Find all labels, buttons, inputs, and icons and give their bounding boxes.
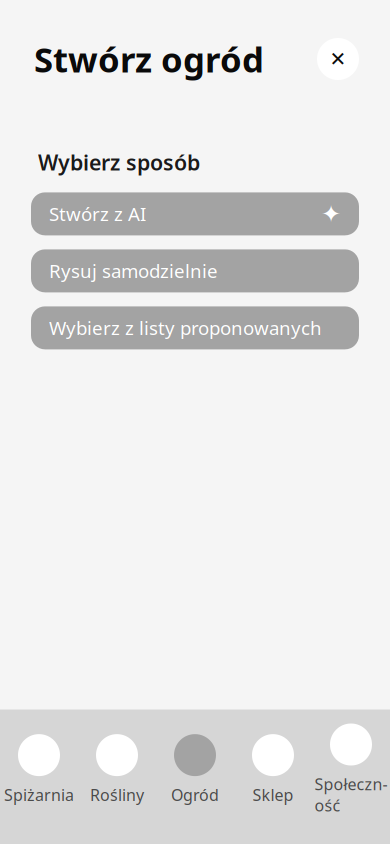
staticText: Ogród (171, 784, 219, 805)
staticText: Społeczność (314, 773, 387, 816)
staticText: Spiżarnia (4, 784, 74, 805)
staticText: Rysuj samodzielnie (49, 258, 218, 283)
button[interactable]: Stwórz z AI (31, 192, 359, 235)
staticText: Stwórz z AI (49, 201, 146, 226)
staticText: Rośliny (90, 784, 144, 805)
staticText: ✦ (321, 200, 341, 227)
staticText: Stwórz ogród (34, 36, 264, 82)
button[interactable]: Spiżarnia (0, 734, 78, 805)
button[interactable]: Wybierz z listy proponowanych (31, 306, 359, 349)
staticText: Wybierz z listy proponowanych (49, 315, 322, 340)
staticText: Sklep (252, 784, 293, 805)
button[interactable]: Społeczność (312, 723, 390, 816)
button[interactable]: Rysuj samodzielnie (31, 249, 359, 292)
staticText: Wybierz sposób (38, 148, 200, 176)
button[interactable]: Rośliny (78, 734, 156, 805)
button[interactable]: Sklep (234, 734, 312, 805)
staticText: ✕ (329, 48, 346, 70)
button[interactable]: Zamknij (317, 38, 359, 80)
button[interactable]: Ogród (156, 734, 234, 805)
